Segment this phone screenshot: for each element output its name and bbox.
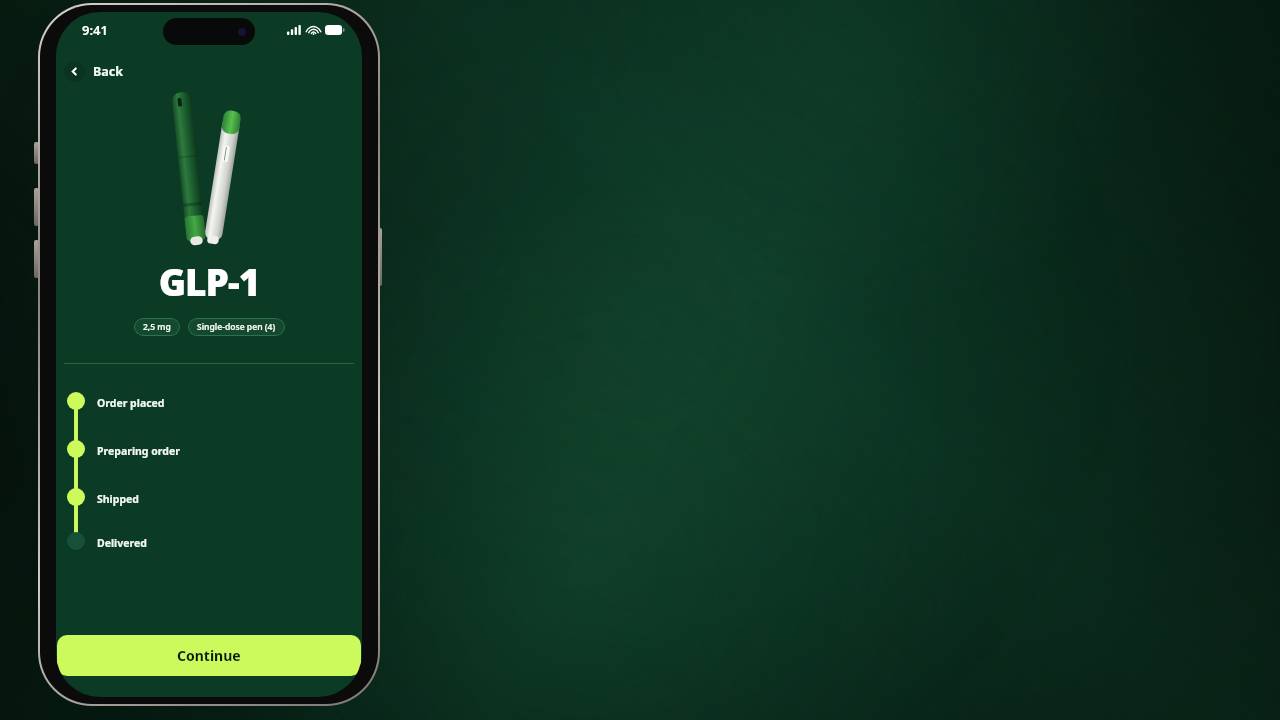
staticText: 2,5 mg (143, 321, 171, 333)
button[interactable]: 2,5 mg (134, 318, 180, 336)
staticText: Delivered (97, 536, 147, 550)
button[interactable]: Single-dose pen (4) (188, 318, 285, 336)
staticText: Order placed (97, 396, 165, 410)
button[interactable]: Shipped (97, 488, 362, 532)
staticText: Shipped (97, 492, 139, 506)
other: Back (64, 61, 85, 82)
staticText: GLP-1 (56, 256, 362, 306)
staticText: Back (93, 63, 124, 80)
staticText: Continue (177, 646, 241, 665)
button[interactable]: Back (64, 58, 124, 84)
button[interactable]: Preparing order (97, 440, 362, 488)
button[interactable]: Delivered (97, 532, 362, 550)
staticText: Single-dose pen (4) (197, 321, 276, 333)
button[interactable]: Continue (57, 635, 361, 676)
staticText: 9:41 (82, 21, 108, 39)
button[interactable]: Order placed (97, 392, 362, 440)
staticText: Preparing order (97, 444, 180, 458)
